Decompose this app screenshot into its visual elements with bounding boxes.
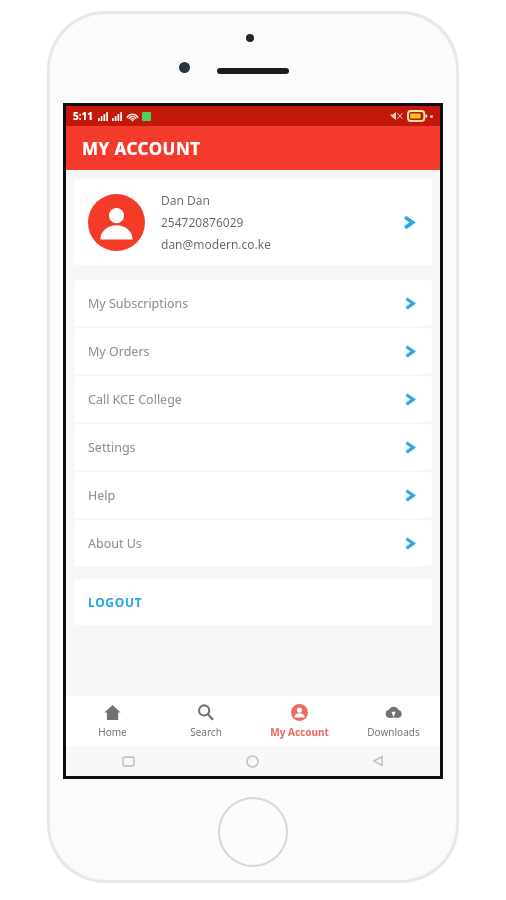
staticText: Downloads bbox=[367, 725, 420, 739]
button[interactable]: My Orders bbox=[74, 328, 432, 374]
button[interactable]: Settings bbox=[74, 424, 432, 470]
staticText: 254720876029 bbox=[161, 214, 244, 230]
staticText: Search bbox=[190, 725, 222, 739]
button[interactable]: My Account bbox=[252, 696, 346, 746]
staticText: My Orders bbox=[88, 343, 401, 360]
other: Home bbox=[104, 704, 121, 721]
staticText: LOGOUT bbox=[88, 594, 143, 610]
staticText: Help bbox=[88, 487, 401, 504]
staticText: Settings bbox=[88, 439, 401, 456]
button[interactable]: Home bbox=[66, 696, 159, 746]
staticText: 5:11 bbox=[73, 109, 93, 123]
staticText: My Subscriptions bbox=[88, 295, 401, 312]
button[interactable]: Call KCE College bbox=[74, 376, 432, 422]
staticText: dan@modern.co.ke bbox=[161, 236, 271, 252]
button[interactable]: Downloads bbox=[346, 696, 440, 746]
staticText: Call KCE College bbox=[88, 391, 401, 408]
staticText: Home bbox=[98, 725, 127, 739]
other: Profile photo bbox=[88, 194, 145, 251]
button[interactable]: Profile photo bbox=[74, 179, 432, 265]
staticText: My Account bbox=[270, 725, 329, 739]
staticText: MY ACCOUNT bbox=[82, 137, 201, 160]
button[interactable]: Search bbox=[159, 696, 252, 746]
button[interactable]: Help bbox=[74, 472, 432, 518]
other: Downloads bbox=[385, 704, 402, 721]
button[interactable]: LOGOUT bbox=[74, 579, 432, 625]
staticText: Dan Dan bbox=[161, 192, 210, 208]
other: Search bbox=[197, 704, 214, 721]
button[interactable]: About Us bbox=[74, 520, 432, 566]
other: My Account bbox=[291, 704, 308, 721]
button[interactable]: My Subscriptions bbox=[74, 280, 432, 326]
staticText: About Us bbox=[88, 535, 401, 552]
